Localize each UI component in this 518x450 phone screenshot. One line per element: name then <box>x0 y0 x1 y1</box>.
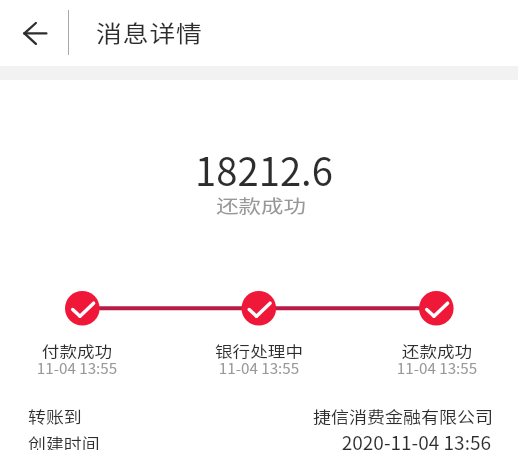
staticText: 消息详情 <box>96 16 203 48</box>
button[interactable]: 创建时间 <box>0 426 518 450</box>
button[interactable]: 银行处理中 <box>169 340 349 382</box>
staticText: 转账到 <box>28 405 82 428</box>
button[interactable]: 付款成功 <box>0 340 167 382</box>
staticText: 银行处理中 <box>169 340 349 362</box>
staticText: 2020-11-04 13:56 <box>1 428 491 450</box>
staticText: 还款成功 <box>347 340 518 362</box>
staticText: 11-04 13:55 <box>169 357 349 378</box>
staticText: 还款成功 <box>2 192 518 218</box>
button[interactable]: Back <box>19 19 49 49</box>
staticText: 付款成功 <box>0 340 167 362</box>
staticText: 11-04 13:55 <box>0 357 167 378</box>
button[interactable]: 转账到 <box>0 399 518 426</box>
staticText: 创建时间 <box>28 432 100 450</box>
button[interactable]: 还款成功 <box>347 340 518 382</box>
staticText: 捷信消费金融有限公司 <box>3 405 493 428</box>
staticText: 18212.6 <box>5 141 518 197</box>
staticText: 11-04 13:55 <box>347 357 518 378</box>
